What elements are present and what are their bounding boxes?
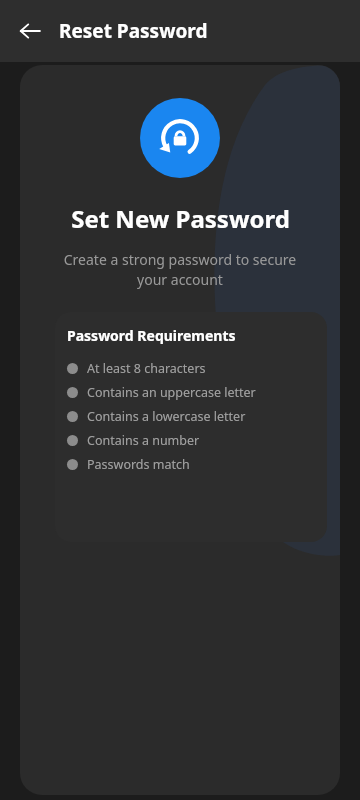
staticText: Passwords match: [87, 456, 190, 473]
button[interactable]: At least 8 characters: [67, 356, 327, 380]
staticText: Create a strong password to secure your …: [55, 250, 305, 290]
staticText: Contains a number: [87, 432, 200, 449]
staticText: Contains a lowercase letter: [87, 408, 246, 425]
staticText: At least 8 characters: [87, 360, 206, 377]
button[interactable]: Contains a number: [67, 428, 327, 452]
button[interactable]: Contains a lowercase letter: [67, 404, 327, 428]
staticText: Reset Password: [59, 18, 208, 44]
button[interactable]: Contains an uppercase letter: [67, 380, 327, 404]
staticText: Set New Password: [71, 202, 290, 235]
button[interactable]: Back: [10, 11, 50, 51]
staticText: Contains an uppercase letter: [87, 384, 256, 401]
staticText: Password Requirements: [67, 326, 236, 345]
button[interactable]: Passwords match: [67, 452, 327, 476]
